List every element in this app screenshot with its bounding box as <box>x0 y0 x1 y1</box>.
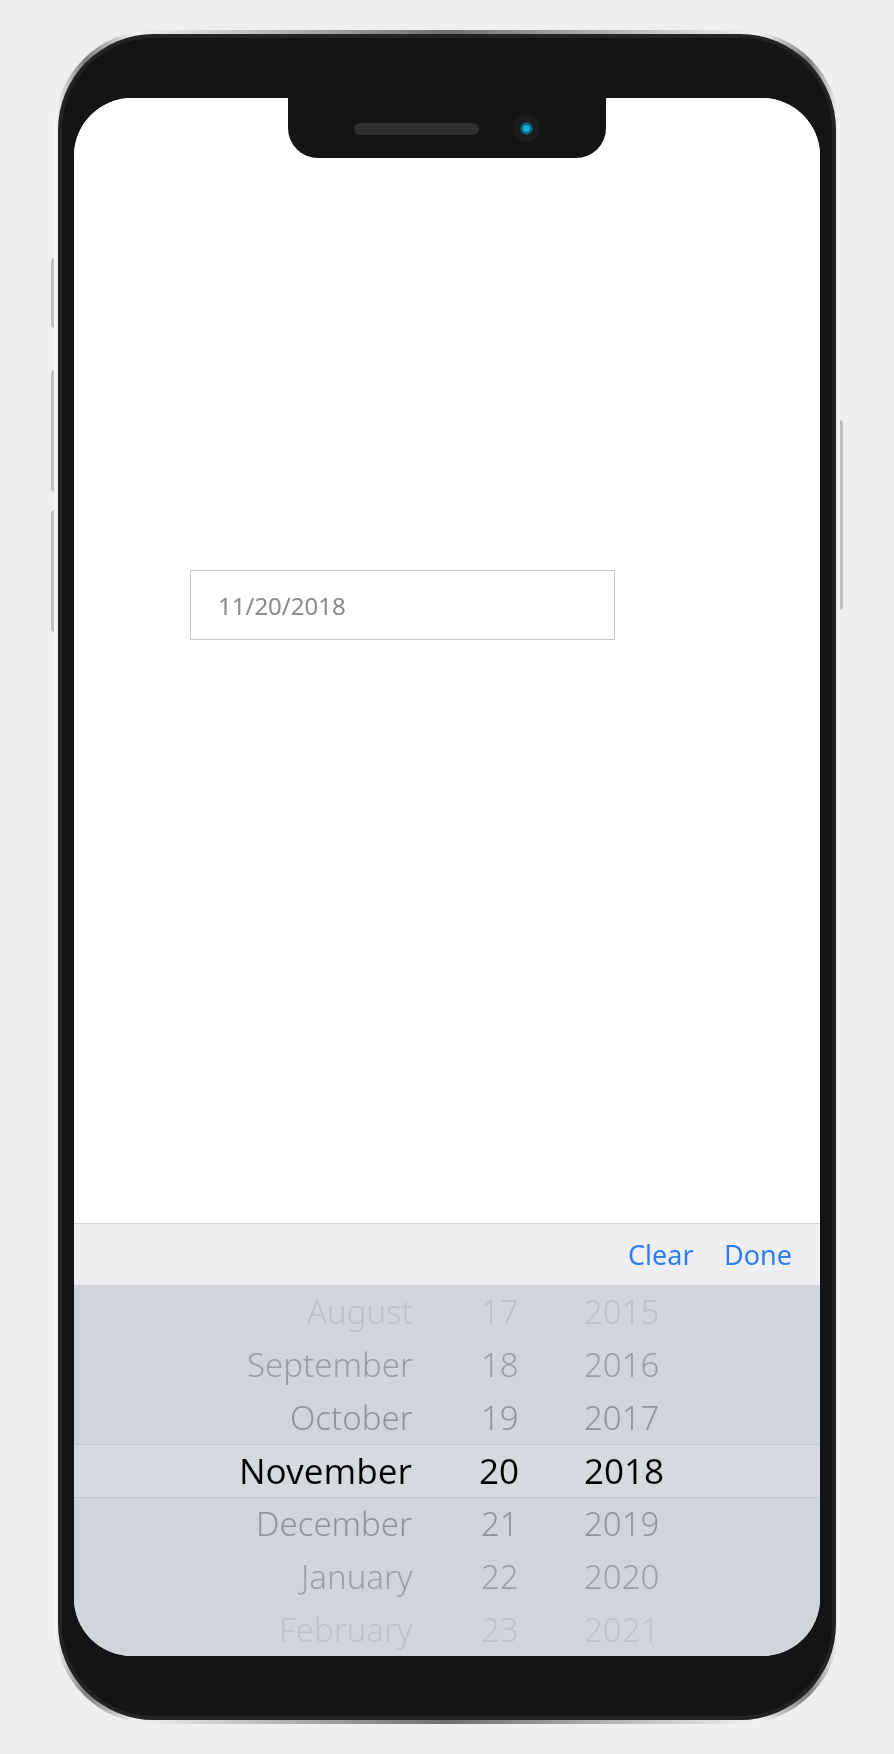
staticText: 22 <box>481 1554 519 1599</box>
staticText: 11/20/2018 <box>218 589 346 622</box>
button[interactable]: August <box>74 1285 820 1338</box>
button[interactable]: December <box>74 1497 820 1550</box>
staticText: 23 <box>481 1607 519 1652</box>
staticText: September <box>247 1342 413 1387</box>
staticText: 18 <box>481 1342 519 1387</box>
button[interactable]: February <box>74 1603 820 1656</box>
button[interactable]: January <box>74 1550 820 1603</box>
staticText: October <box>290 1395 413 1440</box>
staticText: 2020 <box>584 1554 660 1599</box>
staticText: February <box>279 1607 413 1652</box>
button[interactable]: November <box>74 1444 820 1497</box>
staticText: 17 <box>481 1289 519 1334</box>
staticText: 2021 <box>584 1607 660 1652</box>
staticText: 19 <box>481 1395 519 1440</box>
staticText: 2016 <box>584 1342 660 1387</box>
staticText: January <box>301 1554 413 1599</box>
button[interactable]: Clear <box>620 1228 702 1281</box>
button[interactable]: October <box>74 1391 820 1444</box>
staticText: 2015 <box>584 1289 660 1334</box>
staticText: 20 <box>479 1447 520 1495</box>
staticText: 2018 <box>584 1447 665 1495</box>
staticText: Done <box>724 1236 792 1273</box>
staticText: November <box>239 1447 413 1495</box>
staticText: December <box>256 1501 413 1546</box>
staticText: 2017 <box>584 1395 660 1440</box>
button[interactable]: 11/20/2018 <box>190 570 615 640</box>
staticText: August <box>307 1289 413 1334</box>
button[interactable]: Done <box>716 1228 800 1281</box>
staticText: 2019 <box>584 1501 660 1546</box>
staticText: Clear <box>628 1236 694 1273</box>
staticText: 21 <box>481 1501 519 1546</box>
button[interactable]: September <box>74 1338 820 1391</box>
